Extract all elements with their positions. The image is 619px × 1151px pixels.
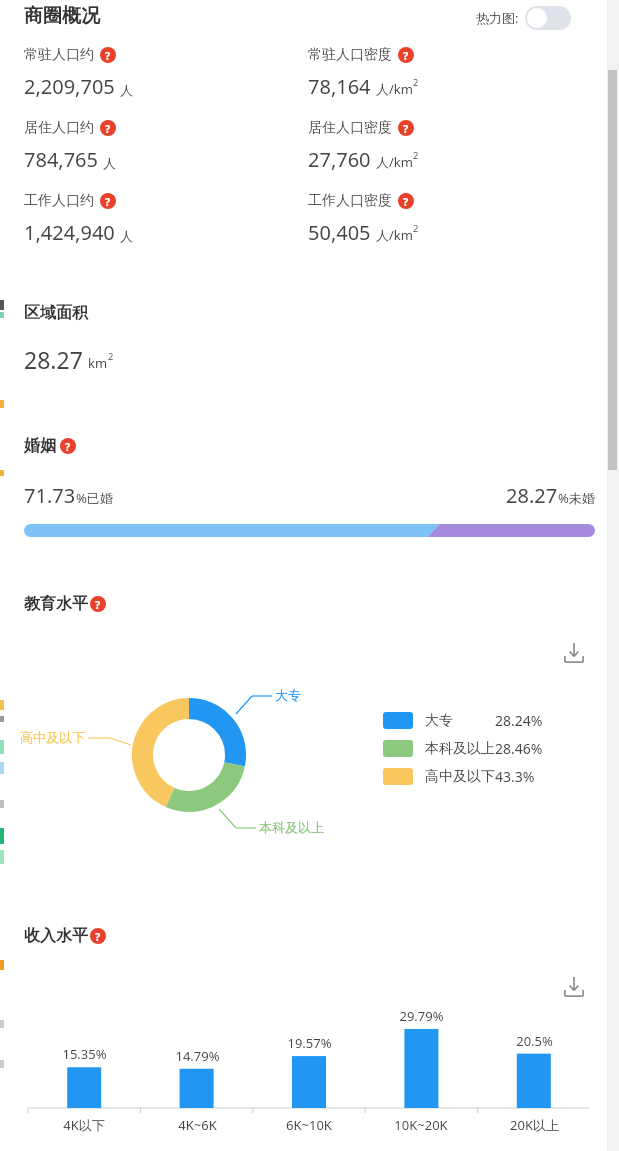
button[interactable]: Download xyxy=(562,641,586,665)
button[interactable]: 4K~6K xyxy=(152,1116,242,1134)
staticText: 人 xyxy=(103,155,116,171)
staticText: ? xyxy=(403,121,409,136)
button[interactable]: 高中及以下 xyxy=(383,767,535,786)
staticText: 2,209,705 xyxy=(24,73,115,100)
staticText: 人/km xyxy=(376,153,413,171)
staticText: %未婚 xyxy=(558,489,595,507)
staticText: ? xyxy=(403,48,409,63)
button[interactable]: 20K以上 xyxy=(489,1116,579,1134)
staticText: 高中及以下 xyxy=(20,729,85,745)
staticText: 1,424,940 xyxy=(24,219,115,246)
staticText: 本科及以上 xyxy=(425,740,495,758)
button[interactable]: 大专 xyxy=(383,711,543,730)
staticText: 婚姻 xyxy=(24,436,56,456)
staticText: 2 xyxy=(413,149,419,162)
staticText: 工作人口密度 xyxy=(308,192,392,210)
button[interactable]: Help xyxy=(60,438,76,454)
button[interactable]: Help xyxy=(100,47,116,63)
staticText: 常驻人口密度 xyxy=(308,46,392,64)
staticText: 人/km xyxy=(376,80,413,98)
staticText: 人/km xyxy=(376,226,413,244)
button[interactable]: 本科及以上 xyxy=(383,739,543,758)
button[interactable]: 婚姻 xyxy=(24,436,76,456)
button[interactable]: 4K以下 xyxy=(39,1116,129,1134)
staticText: 29.79% xyxy=(399,1007,444,1025)
staticText: 6K~10K xyxy=(286,1116,332,1134)
staticText: 收入水平 xyxy=(24,926,88,946)
staticText: 78,164 xyxy=(308,73,371,100)
staticText: 区域面积 xyxy=(24,303,88,323)
button[interactable]: 收入水平 xyxy=(24,926,106,946)
staticText: 28.27 xyxy=(506,482,558,509)
staticText: 10K~20K xyxy=(394,1116,448,1134)
staticText: 本科及以上 xyxy=(259,819,324,835)
staticText: 2 xyxy=(413,222,419,235)
staticText: ? xyxy=(403,194,409,209)
staticText: 28.24% xyxy=(495,711,543,730)
button[interactable]: Download xyxy=(562,975,586,999)
staticText: 20.5% xyxy=(516,1032,553,1050)
button[interactable]: 居住人口约 xyxy=(24,119,116,137)
staticText: ? xyxy=(95,597,101,612)
staticText: 常驻人口约 xyxy=(24,46,94,64)
staticText: 居住人口密度 xyxy=(308,119,392,137)
staticText: 20K以上 xyxy=(510,1116,559,1134)
staticText: %已婚 xyxy=(76,489,113,507)
staticText: ? xyxy=(105,121,111,136)
staticText: 43.3% xyxy=(495,767,535,786)
staticText: ? xyxy=(65,439,71,454)
staticText: 14.79% xyxy=(175,1047,220,1065)
staticText: 人 xyxy=(120,228,133,244)
button[interactable]: Help xyxy=(398,47,414,63)
button[interactable]: Help xyxy=(398,120,414,136)
staticText: 28.46% xyxy=(495,739,543,758)
button[interactable]: 居住人口密度 xyxy=(308,119,414,137)
button[interactable]: 6K~10K xyxy=(264,1116,354,1134)
staticText: 高中及以下 xyxy=(425,768,495,786)
staticText: 2 xyxy=(108,350,114,363)
button[interactable]: 10K~20K xyxy=(376,1116,466,1134)
staticText: 784,765 xyxy=(24,146,98,173)
staticText: 2 xyxy=(413,76,419,89)
button[interactable]: 常驻人口密度 xyxy=(308,46,414,64)
staticText: 15.35% xyxy=(62,1045,107,1063)
button[interactable]: Help xyxy=(100,120,116,136)
staticText: 教育水平 xyxy=(24,594,88,614)
button[interactable]: 热力图: xyxy=(476,6,571,30)
staticText: 商圈概况 xyxy=(24,4,100,28)
staticText: 4K~6K xyxy=(178,1116,217,1134)
staticText: ? xyxy=(105,194,111,209)
staticText: ? xyxy=(95,929,101,944)
staticText: 人 xyxy=(120,82,133,98)
staticText: 27,760 xyxy=(308,146,371,173)
staticText: 大专 xyxy=(425,712,453,730)
button[interactable]: Help xyxy=(90,928,106,944)
staticText: km xyxy=(88,354,108,372)
button[interactable]: 工作人口约 xyxy=(24,192,116,210)
staticText: 4K以下 xyxy=(63,1116,105,1134)
staticText: 19.57% xyxy=(287,1034,332,1052)
other: Heat map toggle xyxy=(525,6,571,30)
staticText: 热力图: xyxy=(476,9,519,27)
staticText: 50,405 xyxy=(308,219,371,246)
staticText: 28.27 xyxy=(24,344,83,375)
button[interactable]: Help xyxy=(100,193,116,209)
staticText: 大专 xyxy=(275,687,301,703)
staticText: 居住人口约 xyxy=(24,119,94,137)
button[interactable]: 工作人口密度 xyxy=(308,192,414,210)
button[interactable]: 常驻人口约 xyxy=(24,46,116,64)
staticText: 71.73 xyxy=(24,482,76,509)
staticText: ? xyxy=(105,48,111,63)
button[interactable]: Help xyxy=(90,596,106,612)
staticText: 工作人口约 xyxy=(24,192,94,210)
button[interactable]: 教育水平 xyxy=(24,594,106,614)
button[interactable]: Help xyxy=(398,193,414,209)
